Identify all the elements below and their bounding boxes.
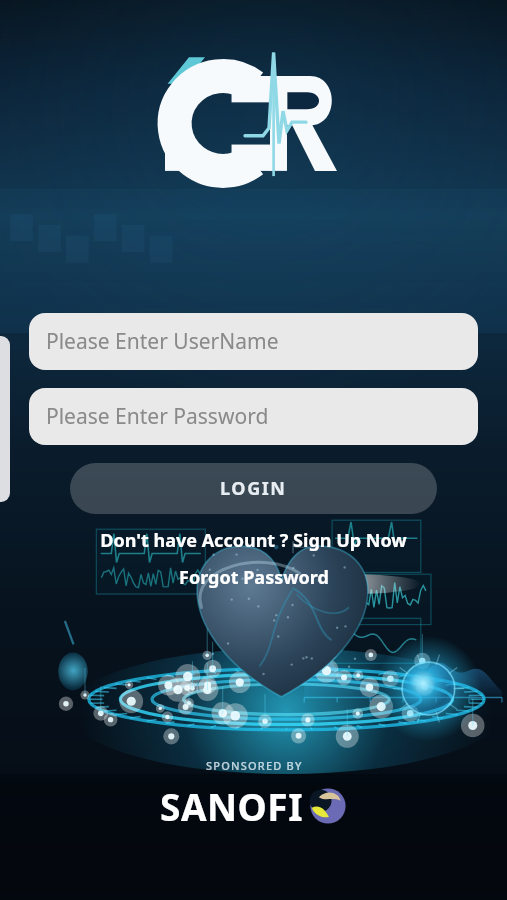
button[interactable]: LOGIN [70, 463, 437, 514]
button[interactable]: Please Enter Password [29, 388, 478, 445]
staticText: Forgot Password [179, 565, 329, 590]
button[interactable]: Don't have Account ? Sign Up Now [40, 528, 467, 553]
staticText: LOGIN [220, 476, 287, 501]
staticText: SPONSORED BY [206, 758, 303, 773]
staticText: Please Enter UserName [46, 327, 279, 356]
button[interactable]: Forgot Password [40, 565, 467, 590]
staticText: SANOFI [160, 781, 304, 831]
button[interactable]: Please Enter UserName [29, 313, 478, 370]
staticText: Don't have Account ? Sign Up Now [100, 528, 407, 553]
staticText: Please Enter Password [46, 402, 269, 431]
